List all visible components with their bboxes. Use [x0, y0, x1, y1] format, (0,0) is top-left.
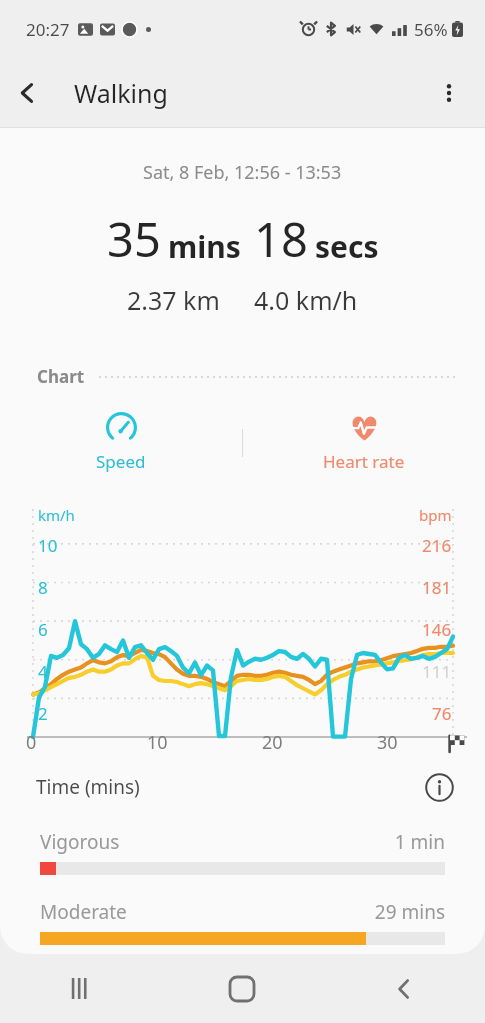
- staticText: 56%: [414, 18, 448, 41]
- button[interactable]: More options: [421, 65, 477, 121]
- staticText: Vigorous: [40, 829, 120, 855]
- staticText: 6: [38, 618, 48, 641]
- button[interactable]: Vigorous: [40, 829, 445, 875]
- staticText: 35: [107, 207, 161, 271]
- button[interactable]: Heart rate: [303, 406, 425, 479]
- staticText: 20:27: [26, 18, 70, 41]
- staticText: 29 mins: [374, 899, 445, 925]
- staticText: 4: [38, 660, 48, 683]
- staticText: Heart rate: [323, 450, 405, 473]
- staticText: 181: [422, 576, 452, 599]
- staticText: mins: [168, 226, 241, 267]
- staticText: 10: [38, 534, 58, 557]
- staticText: 30: [377, 730, 398, 755]
- staticText: 0: [26, 730, 56, 755]
- staticText: Chart: [37, 365, 85, 388]
- staticText: 18: [254, 207, 308, 271]
- button[interactable]: Home: [161, 954, 323, 1023]
- staticText: 2.37 km: [127, 283, 220, 317]
- button[interactable]: Recent apps: [0, 954, 161, 1023]
- staticText: bpm: [419, 505, 452, 525]
- staticText: 8: [38, 576, 48, 599]
- staticText: Time (mins): [36, 774, 140, 800]
- button[interactable]: Speed: [76, 406, 166, 479]
- staticText: Sat, 8 Feb, 12:56 - 13:53: [143, 160, 342, 185]
- staticText: 111: [422, 660, 452, 683]
- staticText: 4.0 km/h: [254, 283, 358, 317]
- staticText: 146: [422, 618, 452, 641]
- staticText: 1 min: [394, 829, 445, 855]
- staticText: Walking: [74, 76, 168, 110]
- button[interactable]: Moderate: [40, 899, 445, 945]
- staticText: Speed: [96, 450, 146, 473]
- staticText: Moderate: [40, 899, 127, 925]
- staticText: km/h: [38, 505, 75, 525]
- staticText: secs: [315, 226, 379, 267]
- button[interactable]: Back: [0, 65, 56, 121]
- staticText: 216: [422, 534, 452, 557]
- button[interactable]: Back: [323, 954, 485, 1023]
- staticText: 2: [38, 702, 48, 725]
- staticText: 20: [262, 730, 283, 755]
- staticText: 76: [432, 702, 452, 725]
- button[interactable]: Information: [419, 767, 459, 807]
- staticText: 10: [147, 730, 168, 755]
